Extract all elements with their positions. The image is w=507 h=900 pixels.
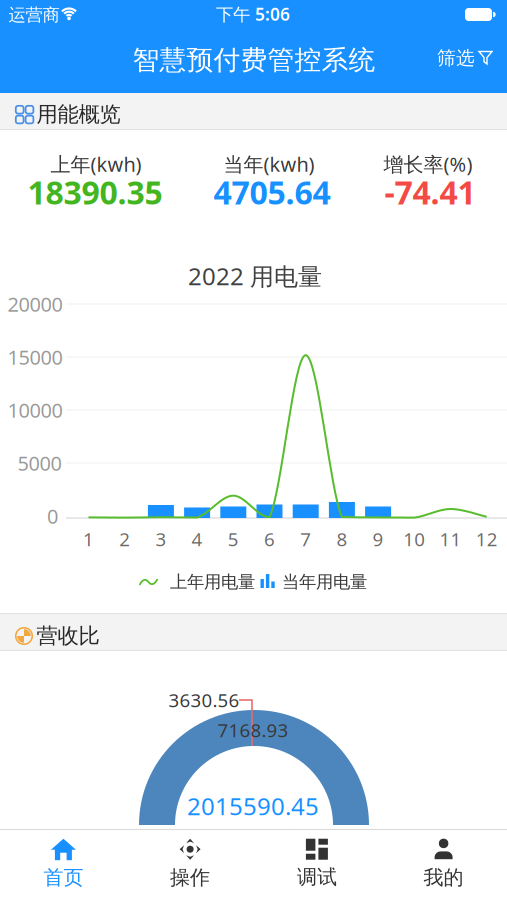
staticText: 用能概览	[36, 101, 120, 128]
staticText: 0	[47, 503, 58, 529]
staticText: 2015590.45	[187, 790, 319, 822]
staticText: 3	[155, 527, 166, 551]
staticText: 1	[83, 527, 94, 551]
staticText: 10000	[7, 397, 62, 423]
staticText: 当年营收总额	[205, 827, 301, 847]
staticText: 11	[439, 527, 461, 551]
staticText: 运营商	[8, 4, 59, 26]
staticText: 4705.64	[213, 171, 330, 213]
staticText: 下午 5:06	[216, 2, 290, 25]
staticText: 4	[192, 527, 203, 551]
staticText: 7168.93	[217, 718, 288, 742]
staticText: 操作	[170, 865, 210, 890]
staticText: 上年用电量	[170, 571, 255, 593]
staticText: 18390.35	[27, 171, 162, 213]
staticText: 调试	[297, 865, 337, 889]
staticText: 5	[228, 527, 239, 551]
button[interactable]: 我的	[381, 831, 507, 897]
staticText: -74.41	[384, 171, 475, 213]
staticText: 当年用电量	[282, 571, 367, 593]
button[interactable]: 筛选	[437, 46, 493, 69]
staticText: 8	[336, 527, 347, 551]
button[interactable]: 首页	[0, 831, 126, 897]
staticText: 7	[300, 527, 311, 551]
button[interactable]: 操作	[127, 831, 253, 897]
staticText: 2	[119, 527, 130, 551]
staticText: 当年(kwh)	[223, 151, 314, 177]
staticText: 12	[476, 527, 498, 551]
staticText: 9	[373, 527, 384, 551]
staticText: 首页	[43, 865, 83, 890]
staticText: 上年(kwh)	[50, 151, 141, 177]
staticText: 6	[264, 527, 275, 551]
staticText: 15000	[7, 344, 62, 370]
staticText: 10	[403, 527, 425, 551]
staticText: 20000	[7, 291, 62, 317]
staticText: 2022 用电量	[188, 260, 322, 292]
button[interactable]: 调试	[254, 831, 380, 897]
staticText: 增长率(%)	[383, 151, 472, 177]
staticText: 我的	[424, 865, 464, 890]
staticText: 营收比	[36, 623, 99, 649]
staticText: 5000	[17, 450, 61, 476]
staticText: 智慧预付费管控系统	[132, 44, 375, 76]
staticText: 筛选	[437, 46, 475, 69]
staticText: 3630.56	[168, 688, 239, 712]
